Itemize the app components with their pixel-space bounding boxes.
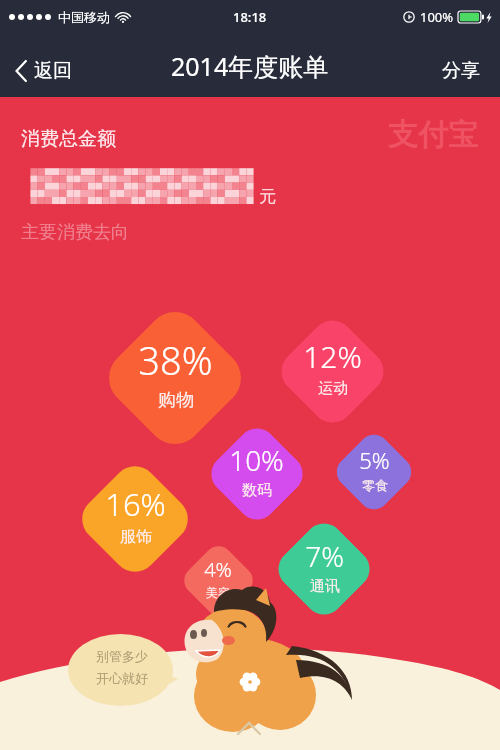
button[interactable]: 展开 Expand: [225, 710, 275, 750]
staticText: 5%: [359, 445, 390, 475]
button[interactable]: [203, 420, 311, 528]
staticText: 零食: [362, 477, 388, 493]
button[interactable]: [97, 300, 253, 456]
button[interactable]: [178, 540, 259, 621]
staticText: 38%: [138, 334, 213, 386]
staticText: 别管多少: [96, 648, 148, 664]
staticText: 12%: [303, 336, 362, 377]
staticText: 美容: [206, 585, 230, 600]
button[interactable]: [272, 311, 393, 432]
staticText: 2014年度账单: [171, 49, 329, 83]
button[interactable]: [270, 515, 378, 623]
button[interactable]: [330, 428, 418, 516]
staticText: 4%: [204, 556, 232, 583]
staticText: 7%: [305, 537, 344, 575]
staticText: 购物: [158, 389, 194, 412]
button[interactable]: [73, 457, 197, 581]
staticText: 返回: [34, 59, 72, 83]
staticText: 元: [259, 186, 276, 207]
staticText: 运动: [318, 379, 348, 398]
staticText: 数码: [242, 481, 272, 500]
staticText: 中国移动: [58, 9, 110, 25]
staticText: 开心就好: [96, 670, 148, 686]
staticText: 16%: [105, 483, 166, 525]
staticText: 18:18: [233, 8, 267, 26]
staticText: 支付宝: [388, 116, 478, 154]
button[interactable]: 返回: [10, 53, 78, 89]
staticText: 主要消费去向: [21, 221, 129, 244]
staticText: 通讯: [310, 577, 340, 596]
staticText: 10%: [229, 441, 284, 479]
staticText: 分享: [442, 59, 480, 83]
staticText: 消费总金额: [21, 127, 116, 151]
button[interactable]: 分享: [436, 53, 486, 89]
staticText: 100%: [420, 8, 454, 26]
staticText: 服饰: [120, 527, 152, 547]
